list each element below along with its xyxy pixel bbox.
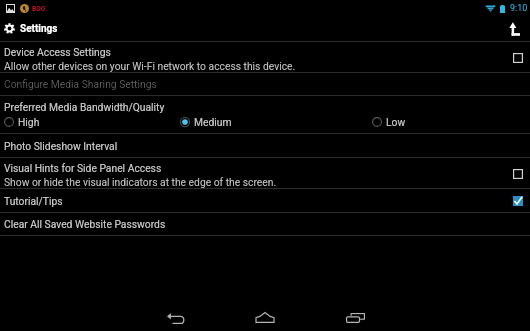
button[interactable]: Back xyxy=(156,306,196,330)
button[interactable]: Preferred Media Bandwidth/Quality xyxy=(0,96,530,133)
staticText: Clear All Saved Website Passwords xyxy=(4,218,166,230)
staticText: Photo Slideshow Interval xyxy=(4,140,118,152)
staticText: High xyxy=(18,116,40,128)
staticText: Visual Hints for Side Panel Access xyxy=(4,162,162,174)
staticText: BOO xyxy=(32,5,46,13)
button[interactable]: Medium xyxy=(176,116,353,128)
button[interactable]: Tutorial/Tips xyxy=(0,189,530,212)
staticText: Settings xyxy=(20,23,58,35)
button[interactable]: Visual Hints for Side Panel Access xyxy=(0,158,530,188)
staticText: Medium xyxy=(194,116,232,128)
button[interactable]: Clear All Saved Website Passwords xyxy=(0,213,530,235)
staticText: Allow other devices on your Wi-Fi networ… xyxy=(4,60,296,72)
button[interactable]: Device Access Settings xyxy=(0,42,530,72)
button[interactable]: Navigate up xyxy=(501,16,526,41)
staticText: Tutorial/Tips xyxy=(4,195,63,207)
button[interactable]: Low xyxy=(353,116,530,128)
staticText: Configure Media Sharing Settings xyxy=(4,78,157,90)
staticText: Show or hide the visual indicators at th… xyxy=(4,176,277,188)
staticText: 9:10 xyxy=(510,3,528,14)
button[interactable]: High xyxy=(0,116,176,128)
staticText: Low xyxy=(386,116,406,128)
staticText: Device Access Settings xyxy=(4,46,111,58)
button[interactable]: Photo Slideshow Interval xyxy=(0,134,530,157)
staticText: Preferred Media Bandwidth/Quality xyxy=(4,101,165,113)
button[interactable]: Recent apps xyxy=(335,306,375,330)
button[interactable]: Home xyxy=(245,305,285,329)
